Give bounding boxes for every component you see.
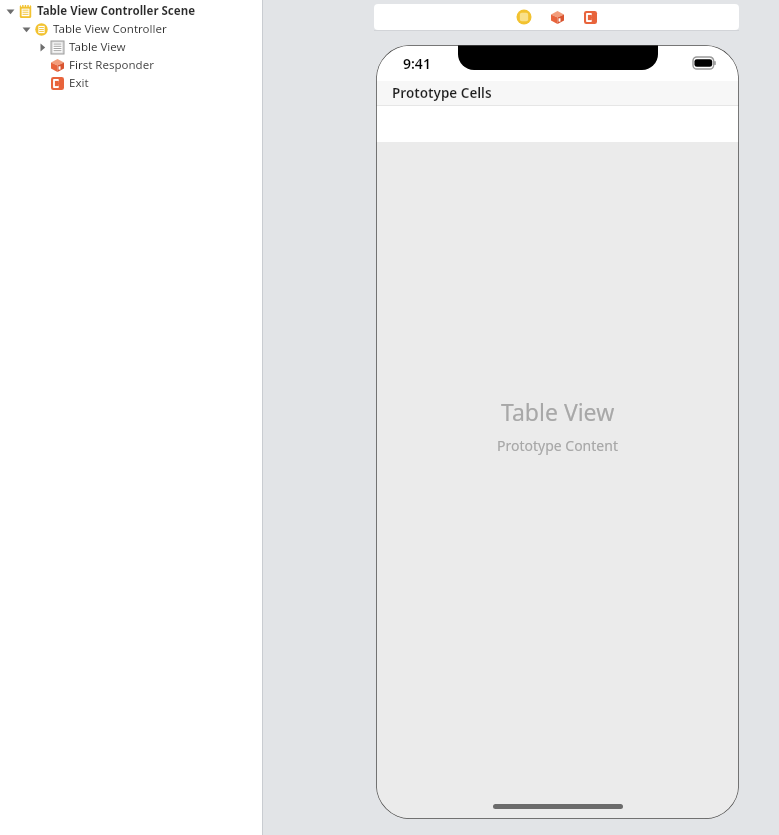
button[interactable]: Exit <box>0 74 262 92</box>
staticText: Table View <box>501 396 615 427</box>
button[interactable]: Exit <box>580 7 600 27</box>
staticText: Prototype Content <box>497 436 618 455</box>
staticText: Table View <box>69 39 126 55</box>
staticText: Table View Controller <box>53 21 167 37</box>
button[interactable]: Table View Controller Scene <box>0 2 262 20</box>
staticText: 9:41 <box>403 54 431 73</box>
staticText: Prototype Cells <box>392 84 492 102</box>
button[interactable]: Table View Controller <box>0 20 262 38</box>
button[interactable] <box>376 106 739 142</box>
button[interactable]: Table View <box>0 38 262 56</box>
staticText: Table View Controller Scene <box>37 3 195 19</box>
button[interactable]: First Responder <box>0 56 262 74</box>
staticText: First Responder <box>69 57 154 73</box>
button[interactable]: View controller <box>514 7 534 27</box>
button[interactable]: First Responder <box>547 7 567 27</box>
staticText: Exit <box>69 75 89 91</box>
